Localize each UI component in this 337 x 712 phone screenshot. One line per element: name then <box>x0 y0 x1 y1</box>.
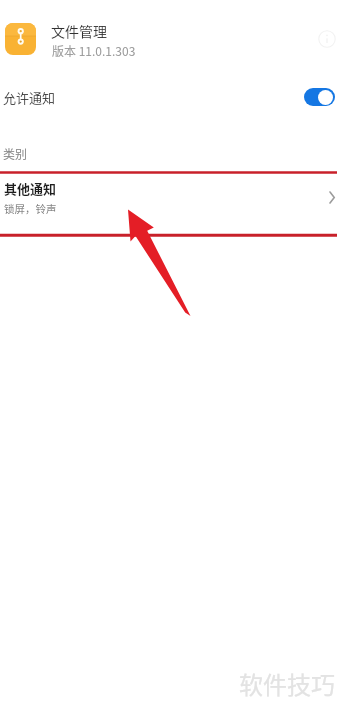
staticText: 类别 <box>3 145 28 162</box>
button[interactable]: 允许通知 <box>0 78 337 118</box>
staticText: 软件技巧 <box>239 666 335 701</box>
staticText: 锁屏，铃声 <box>4 201 57 216</box>
button[interactable]: Allow notifications <box>304 88 335 106</box>
button[interactable]: App info <box>316 28 337 50</box>
staticText: 文件管理 <box>51 21 107 41</box>
staticText: 其他通知 <box>4 179 57 198</box>
button[interactable]: 其他通知 <box>0 174 337 232</box>
button[interactable]: 文件管理 <box>0 0 337 78</box>
staticText: 允许通知 <box>3 88 56 107</box>
staticText: 版本 11.0.1.303 <box>52 42 136 59</box>
